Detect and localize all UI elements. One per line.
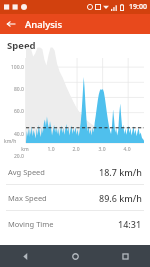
button[interactable]: Home	[50, 245, 100, 267]
button[interactable]: Back	[0, 245, 50, 267]
staticText: Speed	[7, 39, 36, 52]
staticText: 80.0	[14, 86, 24, 93]
staticText: 2.0	[72, 146, 80, 153]
button[interactable]: Recents	[100, 245, 150, 267]
staticText: Max Speed	[8, 193, 47, 203]
staticText: 40.0	[14, 131, 24, 138]
staticText: Avg Speed	[8, 167, 45, 177]
staticText: 14:31	[118, 218, 142, 230]
staticText: km/h	[4, 138, 17, 145]
staticText: Moving Time	[8, 219, 54, 229]
staticText: 18.7 km/h	[99, 166, 142, 178]
staticText: Analysis	[25, 18, 62, 31]
staticText: 4.0	[123, 146, 131, 153]
staticText: 19:00	[129, 2, 147, 12]
button[interactable]: Max Speed	[0, 185, 150, 210]
staticText: 20.0	[14, 153, 24, 160]
button[interactable]: Moving Time	[0, 211, 150, 236]
button[interactable]: Avg Speed	[0, 159, 150, 184]
staticText: km	[21, 146, 29, 153]
staticText: 89.6 km/h	[99, 192, 142, 204]
staticText: 3.0	[98, 146, 106, 153]
staticText: 100.0	[11, 64, 24, 71]
button[interactable]: Back	[3, 16, 19, 32]
staticText: 60.0	[14, 108, 24, 115]
staticText: 1.0	[47, 146, 55, 153]
